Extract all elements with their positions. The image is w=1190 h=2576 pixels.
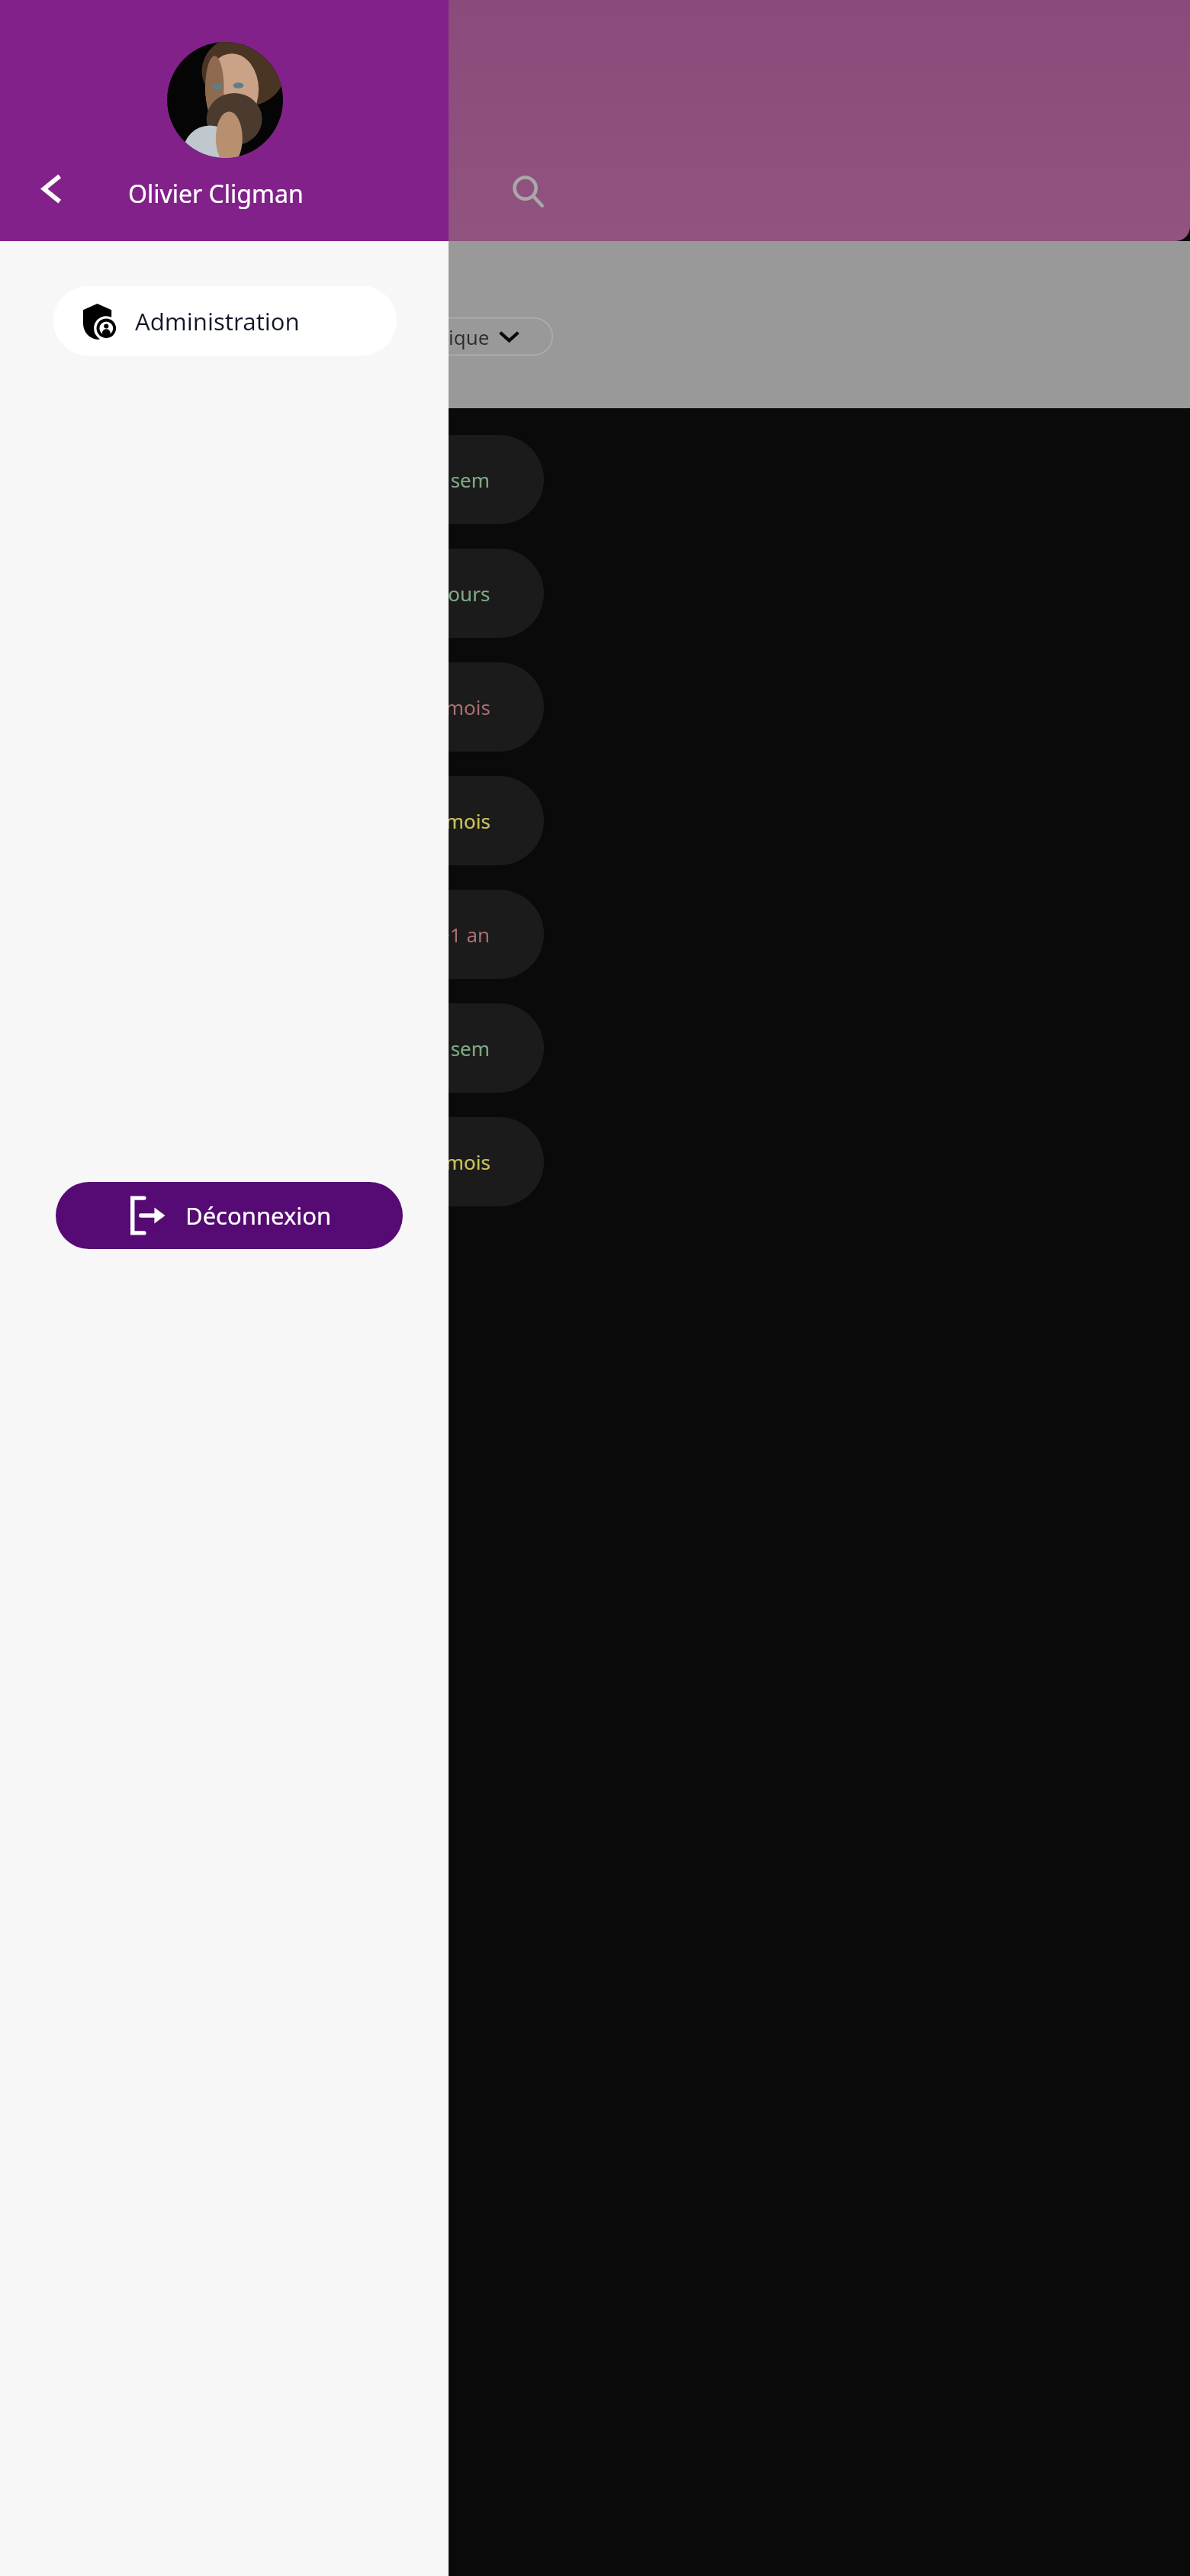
button[interactable]: 4 mois <box>0 1117 544 1206</box>
button[interactable]: Back <box>27 164 76 214</box>
button[interactable]: Déconnexion <box>56 1182 403 1249</box>
button[interactable]: 3 mois <box>0 776 544 865</box>
button[interactable]: Search <box>500 163 557 220</box>
staticText: Administration <box>135 305 300 337</box>
button[interactable]: 3 sem <box>0 1003 544 1093</box>
staticText: etique <box>430 324 490 350</box>
staticText: 3 sem <box>434 1035 490 1061</box>
staticText: 7 mois <box>429 694 490 720</box>
button[interactable]: 2 sem <box>0 435 544 524</box>
staticText: 3 mois <box>429 807 490 834</box>
staticText: 4 mois <box>429 1148 490 1175</box>
staticText: 2 sem <box>434 466 490 493</box>
button[interactable]: +1 an <box>0 890 544 979</box>
staticText: +1 an <box>439 921 490 948</box>
button[interactable]: 4 jours <box>0 549 544 638</box>
button[interactable]: etique <box>427 317 553 356</box>
staticText: Déconnexion <box>185 1199 332 1232</box>
button[interactable]: Administration <box>53 286 397 356</box>
staticText: Olivier Cligman <box>128 177 304 211</box>
staticText: 4 jours <box>426 580 490 607</box>
button[interactable]: 7 mois <box>0 662 544 752</box>
